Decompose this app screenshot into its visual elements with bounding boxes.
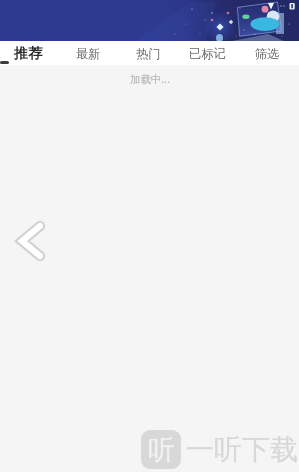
staticText: 一听下载 [186,432,298,467]
staticText: 热门 [136,46,161,61]
button[interactable]: 最新 [76,41,101,65]
button[interactable]: 热门 [136,41,161,65]
staticText: 最新 [76,46,101,61]
button[interactable]: 已标记 [189,41,226,65]
button[interactable]: 筛选 [255,41,280,65]
staticText: 听 [148,433,175,467]
staticText: 加载中... [130,72,170,86]
staticText: 已标记 [189,46,226,61]
button[interactable]: 推荐 [14,41,43,65]
staticText: 推荐 [14,44,43,62]
button[interactable]: Back [11,215,55,269]
staticText: 筛选 [255,46,280,61]
